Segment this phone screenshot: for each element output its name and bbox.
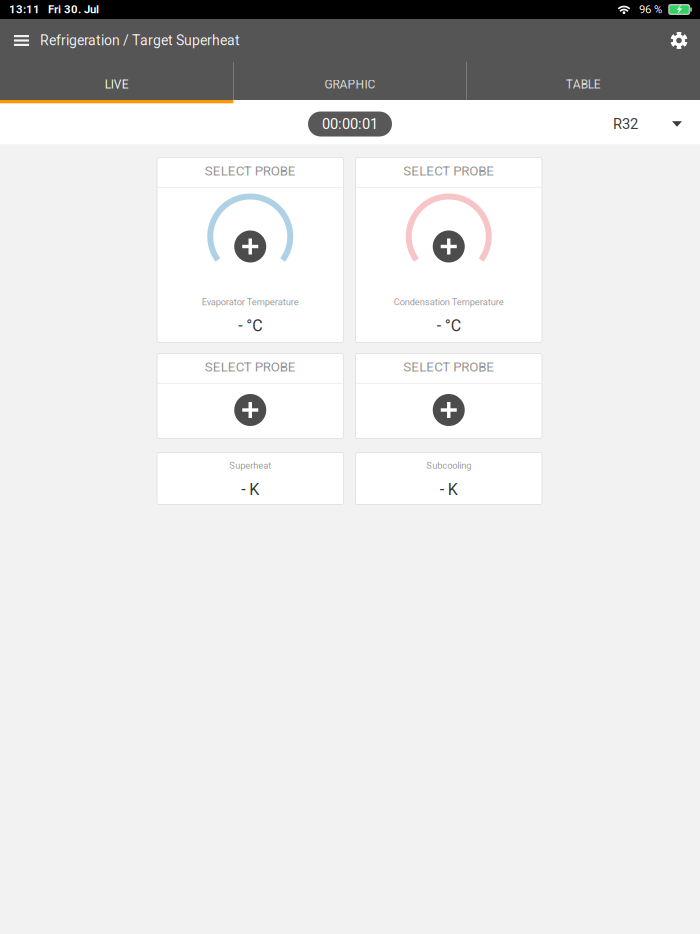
- button[interactable]: Add probe: [406, 193, 492, 279]
- staticText: LIVE: [105, 77, 129, 92]
- staticText: TABLE: [566, 77, 601, 92]
- button[interactable]: GRAPHIC: [233, 62, 467, 103]
- staticText: - °C: [238, 316, 262, 335]
- staticText: GRAPHIC: [324, 77, 375, 92]
- button[interactable]: TABLE: [467, 62, 700, 103]
- staticText: - K: [440, 480, 458, 499]
- button[interactable]: SELECT PROBE: [355, 157, 542, 185]
- staticText: Condensation Temperature: [394, 296, 504, 307]
- button[interactable]: Add probe: [234, 394, 266, 426]
- staticText: 13:11: [9, 3, 40, 16]
- button[interactable]: Add probe: [433, 394, 465, 426]
- button[interactable]: SELECT PROBE: [355, 353, 542, 381]
- button[interactable]: Settings: [663, 19, 695, 62]
- button[interactable]: Menu: [7, 19, 36, 62]
- staticText: Subcooling: [426, 460, 471, 471]
- staticText: - °C: [437, 316, 461, 335]
- staticText: SELECT PROBE: [403, 163, 494, 179]
- staticText: R32: [613, 115, 638, 133]
- staticText: SELECT PROBE: [403, 359, 494, 375]
- button[interactable]: SELECT PROBE: [157, 157, 343, 185]
- button[interactable]: R32: [601, 103, 692, 144]
- button[interactable]: 00:00:01: [308, 111, 392, 136]
- staticText: SELECT PROBE: [205, 163, 296, 179]
- staticText: 00:00:01: [322, 115, 378, 133]
- staticText: Superheat: [229, 460, 271, 471]
- button[interactable]: Add probe: [207, 193, 293, 279]
- staticText: 96 %: [639, 3, 662, 16]
- staticText: Fri 30. Jul: [48, 3, 99, 16]
- staticText: SELECT PROBE: [205, 359, 296, 375]
- staticText: - K: [241, 480, 259, 499]
- button[interactable]: SELECT PROBE: [157, 353, 343, 381]
- staticText: Refrigeration / Target Superheat: [40, 32, 240, 49]
- button[interactable]: LIVE: [0, 62, 233, 103]
- staticText: Evaporator Temperature: [202, 296, 299, 307]
